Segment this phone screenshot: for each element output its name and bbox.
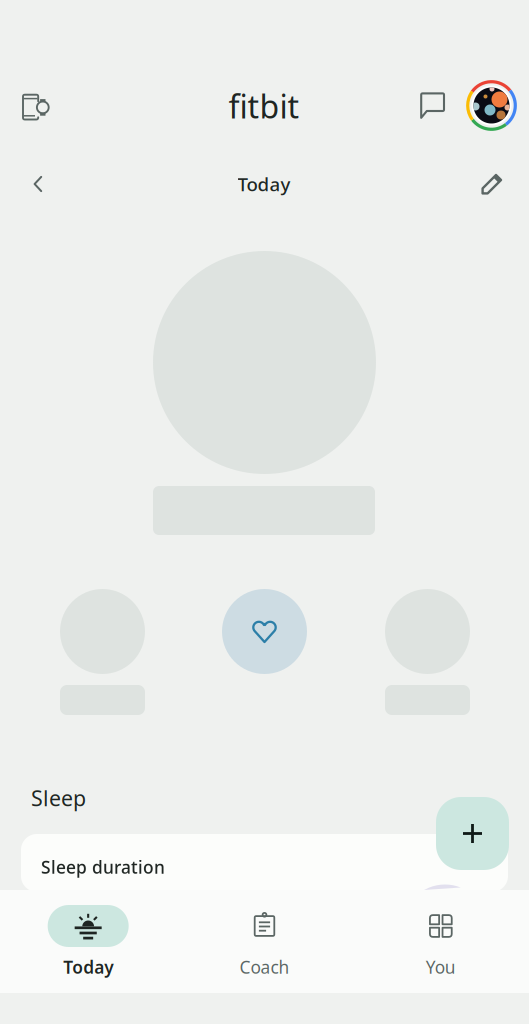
- staticText: Sleep: [31, 784, 86, 812]
- button[interactable]: Devices: [8, 81, 64, 133]
- button[interactable]: Today: [0, 905, 176, 978]
- staticText: fitbit: [228, 85, 299, 127]
- staticText: Coach: [239, 955, 289, 978]
- button[interactable]: Coach: [176, 905, 353, 978]
- button[interactable]: You: [353, 905, 529, 978]
- button[interactable]: Previous day: [12, 160, 64, 208]
- staticText: Today: [237, 172, 290, 196]
- button[interactable]: Profile: [466, 80, 517, 131]
- staticText: Sleep duration: [41, 855, 165, 878]
- button[interactable]: Edit: [466, 160, 518, 208]
- staticText: You: [426, 955, 456, 978]
- button[interactable]: Add: [436, 797, 509, 870]
- staticText: Today: [63, 955, 113, 978]
- button[interactable]: Messages: [408, 80, 458, 132]
